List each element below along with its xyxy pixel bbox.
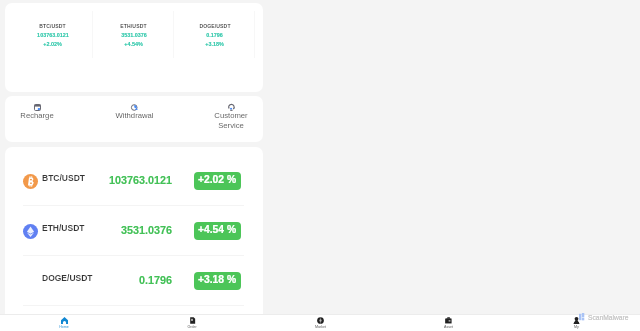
staticText: +2.02 %	[198, 174, 237, 186]
staticText: BTC/USDT	[42, 173, 85, 182]
other: Home	[61, 317, 68, 324]
staticText: +3.18 %	[198, 274, 237, 286]
staticText: ETH/USDT	[42, 223, 85, 232]
staticText: 0.1796	[138, 274, 172, 286]
staticText: 0.1796	[206, 32, 223, 38]
button[interactable]: Market	[256, 315, 384, 331]
staticText: ETH/USDT	[120, 23, 147, 29]
staticText: +2.02%	[43, 41, 62, 47]
staticText: 3531.0376	[120, 224, 172, 236]
staticText: 3531.0376	[121, 32, 147, 38]
button[interactable]: Asset	[384, 315, 512, 331]
button[interactable]: Customer Service	[214, 104, 248, 130]
staticText: +4.54%	[124, 41, 143, 47]
staticText: Market	[315, 325, 326, 329]
button[interactable]: ETH/USDT	[93, 3, 174, 92]
staticText: Order	[187, 325, 197, 329]
button[interactable]: DOGE/USDT	[174, 3, 255, 92]
button[interactable]: Order	[128, 315, 256, 331]
button[interactable]: BTC/USDT	[12, 3, 93, 92]
staticText: Withdrawal	[115, 111, 154, 120]
staticText: Customer Service	[214, 111, 248, 130]
staticText: BTC/USDT	[39, 23, 66, 29]
staticText: Asset	[444, 325, 453, 329]
button[interactable]: Withdrawal	[115, 104, 154, 120]
staticText: DOGE/USDT	[199, 23, 231, 29]
staticText: 103763.0121	[37, 32, 69, 38]
button[interactable]: DOGE/USDT	[5, 256, 263, 306]
button[interactable]: My	[512, 315, 640, 331]
staticText: DOGE/USDT	[42, 273, 93, 282]
staticText: 103763.0121	[108, 174, 172, 186]
staticText: Home	[59, 325, 69, 329]
staticText: ScanMalware	[588, 314, 629, 321]
staticText: +3.18%	[205, 41, 224, 47]
staticText: +4.54 %	[198, 224, 237, 236]
staticText: My	[574, 325, 579, 329]
other: Market	[317, 317, 324, 324]
button[interactable]: Home	[0, 315, 128, 331]
other: Order	[189, 317, 196, 324]
other: My	[573, 317, 580, 324]
staticText: Recharge	[20, 111, 54, 120]
button[interactable]: Recharge	[20, 104, 54, 120]
button[interactable]: ETH/USDT	[5, 206, 263, 256]
other: Asset	[445, 317, 452, 324]
button[interactable]: BTC/USDT	[5, 156, 263, 206]
